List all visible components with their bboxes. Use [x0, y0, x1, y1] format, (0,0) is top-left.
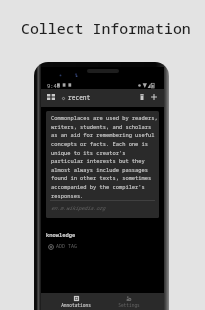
staticText: as an aid for remembering useful — [51, 131, 155, 138]
staticText: en.m.wikipedia.org — [51, 205, 106, 212]
button[interactable]: Annotations — [50, 293, 102, 308]
button[interactable]: Add — [147, 90, 160, 103]
staticText: Commonplaces are used by readers, — [51, 114, 158, 121]
staticText: Annotations — [61, 302, 91, 308]
button[interactable]: Apps menu — [44, 90, 57, 103]
button[interactable]: ADD TAG — [48, 243, 78, 250]
staticText: responses. — [51, 192, 84, 199]
staticText: knowledge — [46, 231, 76, 238]
staticText: found in other texts, sometimes — [51, 174, 152, 181]
staticText: Settings — [118, 302, 140, 308]
staticText: Collect Information — [21, 18, 191, 38]
staticText: 9:46 — [47, 82, 60, 89]
staticText: recent — [68, 93, 91, 101]
staticText: writers, students, and scholars — [51, 123, 152, 130]
staticText: concepts or facts. Each one is — [51, 140, 149, 147]
staticText: unique to its creator's — [51, 149, 126, 156]
staticText: ADD TAG — [56, 243, 78, 250]
staticText: accompanied by the compiler's — [51, 183, 145, 190]
button[interactable]: Delete — [135, 90, 148, 103]
staticText: almost always include passages — [51, 166, 149, 173]
staticText: particular interests but they — [51, 157, 145, 164]
button[interactable]: Settings — [102, 293, 155, 308]
